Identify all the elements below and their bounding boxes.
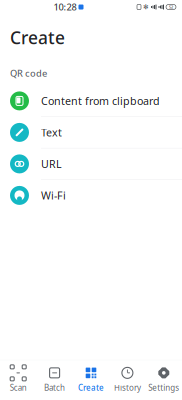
staticText: 10:28: [53, 1, 76, 13]
staticText: Content from clipboard: [41, 94, 160, 108]
staticText: QR code: [10, 67, 47, 79]
button[interactable]: Wi-Fi: [0, 180, 182, 211]
button[interactable]: Text: [0, 117, 182, 148]
button[interactable]: Create: [73, 366, 109, 393]
staticText: ✻: [143, 3, 149, 11]
button[interactable]: Settings: [146, 366, 182, 393]
staticText: Text: [41, 125, 62, 139]
staticText: Settings: [148, 382, 179, 393]
staticText: History: [114, 382, 141, 393]
staticText: Batch: [44, 382, 65, 393]
staticText: 52: [169, 4, 173, 10]
button[interactable]: Batch: [36, 366, 73, 393]
button[interactable]: Scan: [0, 366, 36, 393]
staticText: Create: [10, 26, 65, 49]
staticText: URL: [41, 157, 62, 171]
button[interactable]: URL: [0, 148, 182, 180]
button[interactable]: Content from clipboard: [0, 85, 182, 117]
staticText: Wi-Fi: [41, 188, 66, 202]
button[interactable]: History: [109, 366, 146, 393]
staticText: Create: [78, 382, 104, 393]
staticText: Scan: [10, 382, 27, 393]
